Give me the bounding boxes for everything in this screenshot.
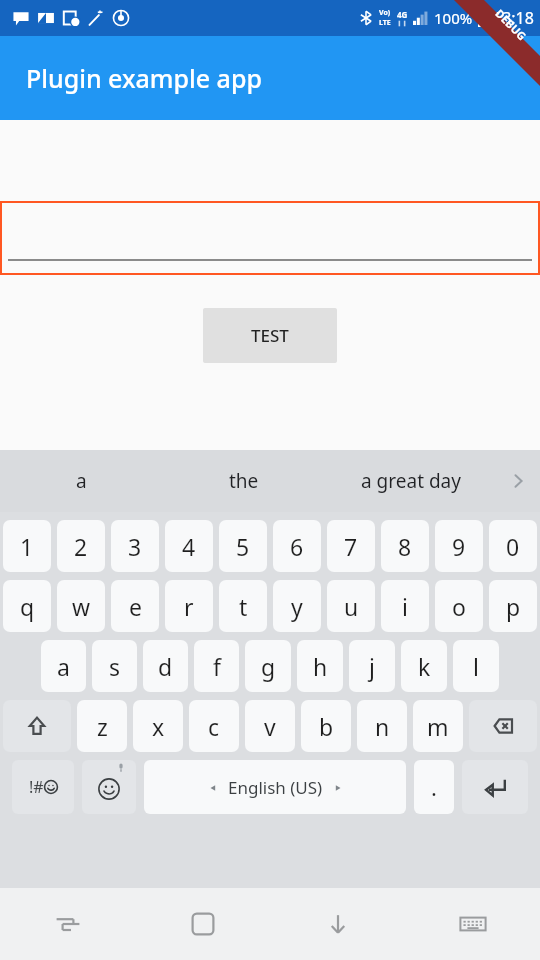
staticText: d (158, 651, 173, 682)
button[interactable]: !# (12, 760, 74, 814)
button[interactable] (0, 201, 540, 275)
button[interactable]: c (189, 700, 239, 752)
button[interactable]: j (349, 640, 395, 692)
staticText: 5 (236, 531, 250, 562)
staticText: a great day (361, 468, 461, 494)
staticText: LTE (379, 18, 391, 28)
staticText: 100% (434, 8, 473, 28)
button[interactable]: g (245, 640, 291, 692)
staticText: i (402, 591, 408, 622)
button[interactable]: English (US) (144, 760, 406, 814)
button[interactable]: the (162, 450, 325, 512)
button[interactable]: i (381, 580, 429, 632)
staticText: 4G (397, 9, 408, 20)
staticText: n (375, 711, 390, 742)
staticText: h (313, 651, 328, 682)
staticText: x (152, 711, 165, 742)
button[interactable]: Hide keyboard (270, 888, 405, 960)
staticText: DEBUG (492, 6, 530, 43)
button[interactable]: 0 (489, 520, 537, 572)
staticText: 4 (182, 531, 196, 562)
button[interactable]: 2 (57, 520, 105, 572)
staticText: z (97, 711, 108, 742)
staticText: l (473, 651, 479, 682)
button[interactable]: Shift (3, 700, 71, 752)
button[interactable]: s (92, 640, 137, 692)
staticText: 2 (74, 531, 88, 562)
staticText: b (319, 711, 334, 742)
staticText: y (291, 591, 303, 622)
staticText: p (506, 591, 521, 622)
staticText: Vo) (379, 8, 391, 18)
button[interactable]: . (414, 760, 454, 814)
staticText: m (427, 711, 449, 742)
button[interactable]: e (111, 580, 159, 632)
staticText: 9 (452, 531, 466, 562)
button[interactable]: 5 (219, 520, 267, 572)
button[interactable]: 8 (381, 520, 429, 572)
button[interactable]: y (273, 580, 321, 632)
staticText: e (129, 591, 142, 622)
button[interactable]: q (3, 580, 51, 632)
staticText: 13:18 (493, 7, 534, 29)
staticText: 0 (506, 531, 520, 562)
button[interactable]: a great day (325, 450, 496, 512)
button[interactable]: x (133, 700, 183, 752)
button[interactable]: u (327, 580, 375, 632)
button[interactable]: 4 (165, 520, 213, 572)
button[interactable]: f (194, 640, 239, 692)
staticText: t (239, 591, 248, 622)
button[interactable]: o (435, 580, 483, 632)
staticText: the (229, 468, 259, 494)
staticText: a (76, 468, 87, 494)
button[interactable]: Home (135, 888, 270, 960)
staticText: s (109, 651, 121, 682)
button[interactable]: 3 (111, 520, 159, 572)
button[interactable]: a (41, 640, 86, 692)
button[interactable]: r (165, 580, 213, 632)
staticText: w (72, 591, 91, 622)
staticText: k (418, 651, 431, 682)
button[interactable]: 6 (273, 520, 321, 572)
button[interactable]: k (401, 640, 447, 692)
staticText: 8 (398, 531, 412, 562)
staticText: !# (29, 776, 44, 798)
staticText: TEST (251, 324, 289, 347)
button[interactable]: a (0, 450, 162, 512)
staticText: 1 (20, 531, 34, 562)
button[interactable]: d (143, 640, 188, 692)
staticText: u (344, 591, 359, 622)
button[interactable]: z (77, 700, 127, 752)
button[interactable]: 9 (435, 520, 483, 572)
button[interactable]: h (297, 640, 343, 692)
button[interactable]: m (413, 700, 463, 752)
button[interactable]: l (453, 640, 499, 692)
button[interactable]: Emoji (82, 760, 136, 814)
button[interactable]: v (245, 700, 295, 752)
staticText: o (452, 591, 466, 622)
staticText: r (184, 591, 194, 622)
button[interactable]: b (301, 700, 351, 752)
button[interactable]: Backspace (469, 700, 537, 752)
staticText: 6 (290, 531, 304, 562)
button[interactable]: t (219, 580, 267, 632)
staticText: . (431, 772, 437, 802)
staticText: Plugin example app (26, 61, 262, 95)
staticText: a (57, 651, 70, 682)
staticText: c (208, 711, 220, 742)
button[interactable]: w (57, 580, 105, 632)
button[interactable]: Recents (0, 888, 135, 960)
button[interactable]: More suggestions (496, 450, 540, 512)
button[interactable]: TEST (203, 308, 337, 363)
staticText: English (US) (228, 776, 323, 799)
button[interactable]: 1 (3, 520, 51, 572)
button[interactable]: p (489, 580, 537, 632)
button[interactable]: 7 (327, 520, 375, 572)
staticText: g (261, 651, 276, 682)
staticText: 3 (128, 531, 142, 562)
button[interactable]: n (357, 700, 407, 752)
button[interactable]: Enter (462, 760, 528, 814)
staticText: v (264, 711, 276, 742)
staticText: j (369, 651, 375, 682)
button[interactable]: Keyboard (405, 888, 540, 960)
